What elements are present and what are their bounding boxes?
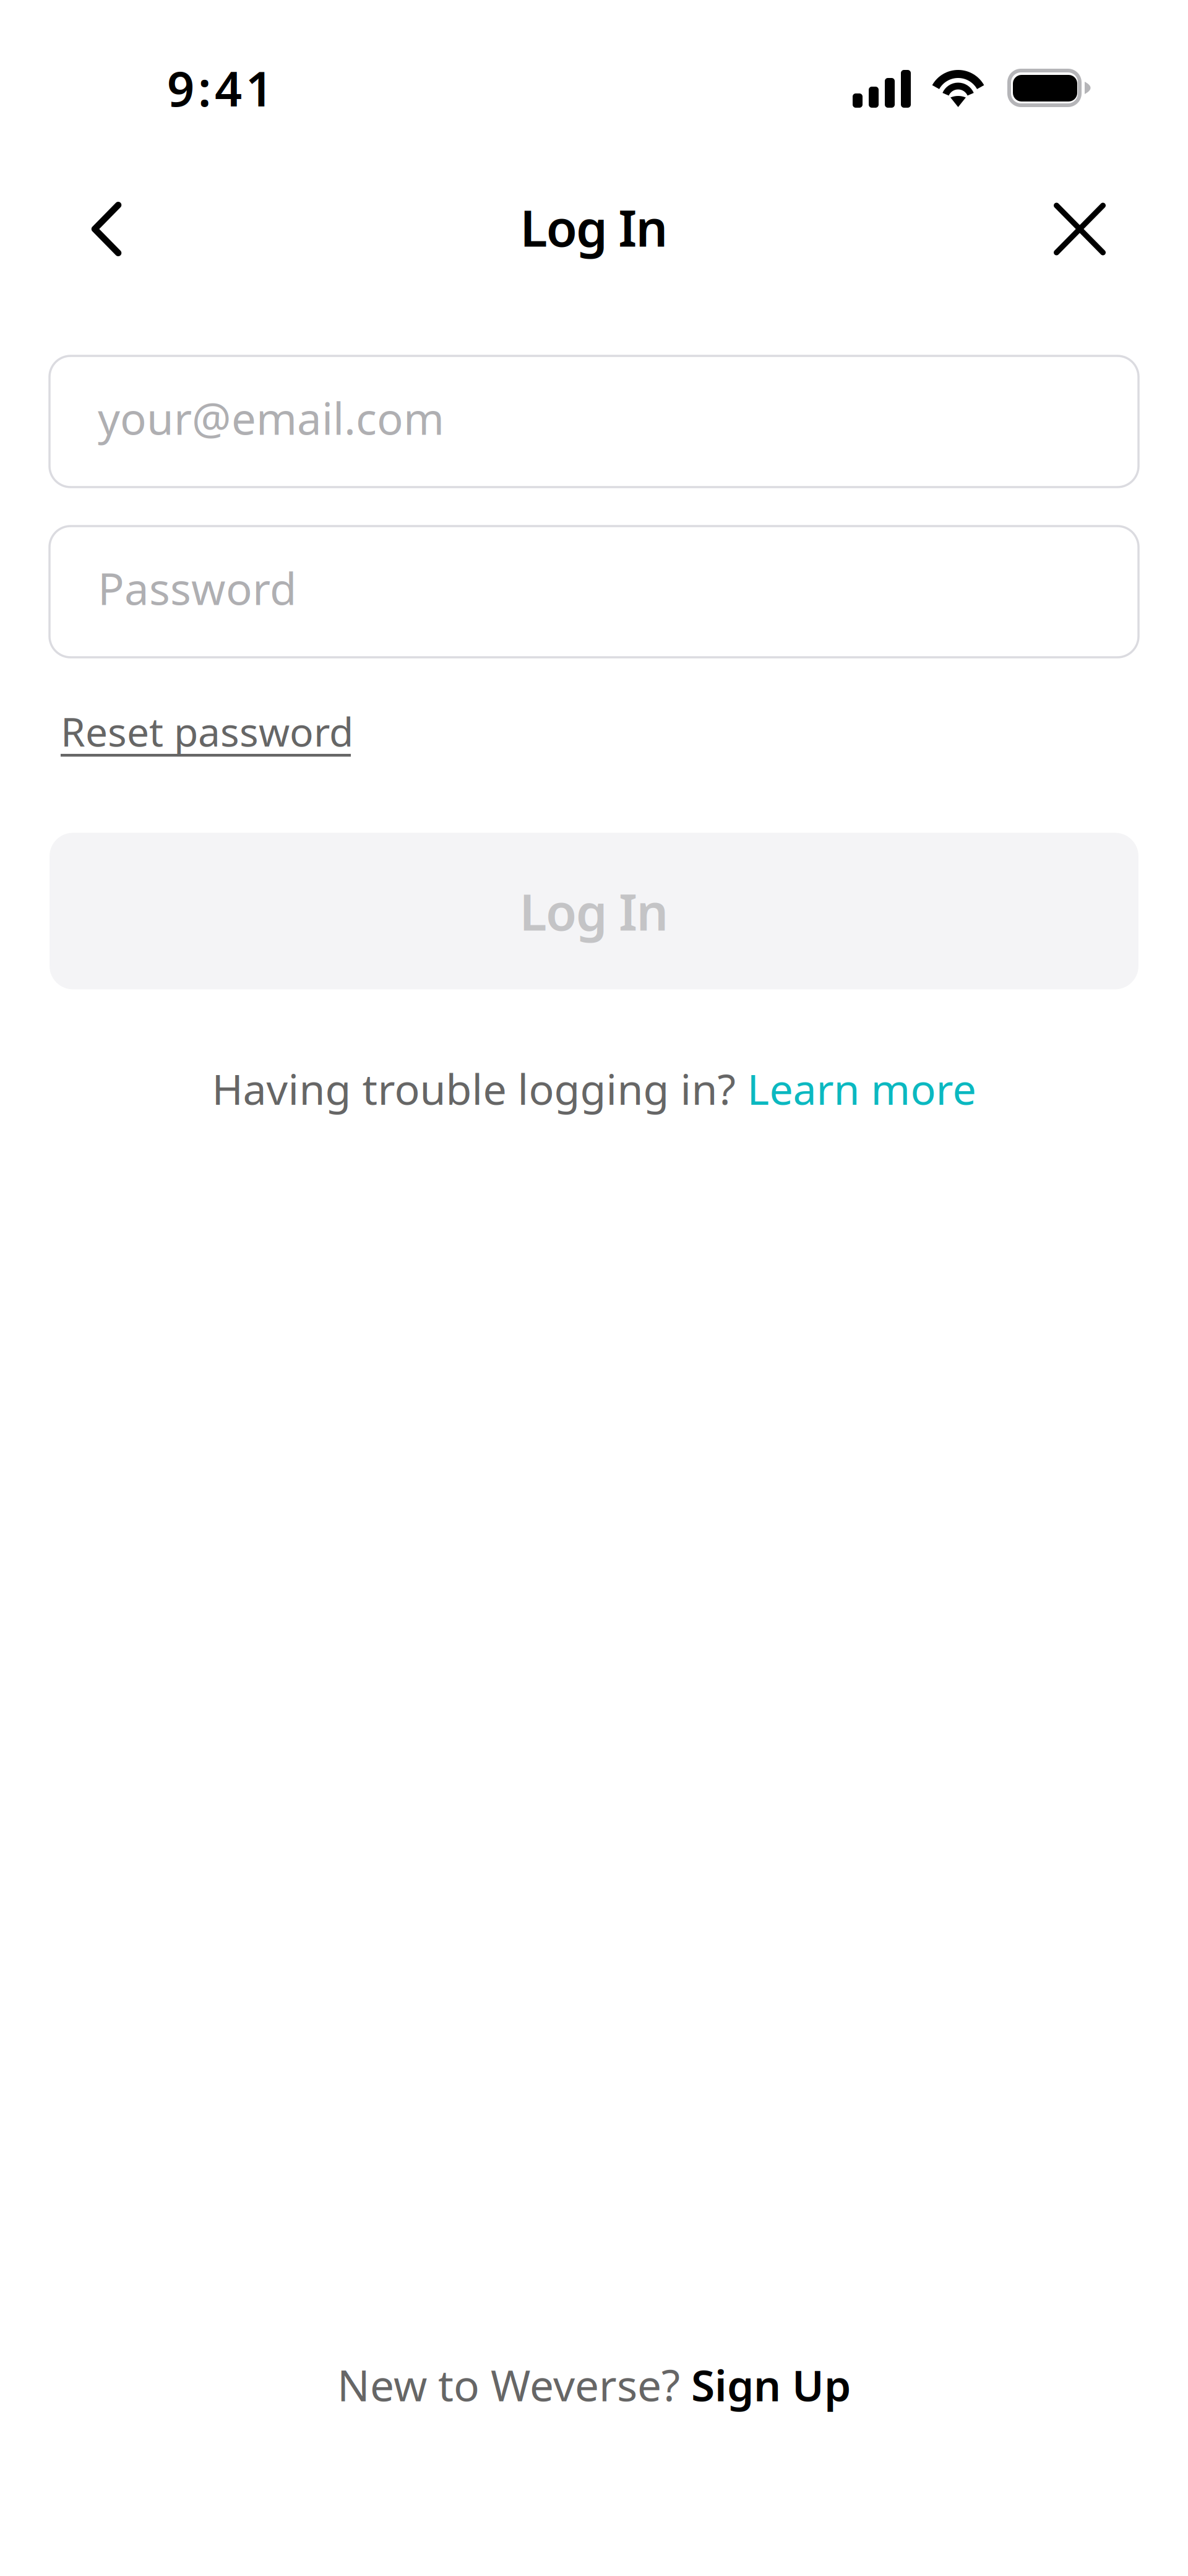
button[interactable]: Reset password xyxy=(61,705,358,760)
button[interactable]: Close xyxy=(1036,186,1123,272)
staticText: Log In xyxy=(519,878,669,944)
button[interactable]: Learn more xyxy=(747,1061,976,1116)
button[interactable]: Password xyxy=(49,526,1138,657)
staticText: Having trouble logging in? xyxy=(212,1061,747,1116)
staticText: Log In xyxy=(520,194,668,261)
button[interactable]: Back xyxy=(63,186,150,272)
staticText: 9:41 xyxy=(167,56,273,120)
staticText: Password xyxy=(98,559,296,617)
staticText: Sign Up xyxy=(691,2356,851,2413)
button[interactable]: Log In xyxy=(49,833,1138,989)
staticText: Reset password xyxy=(61,705,353,758)
staticText: New to Weverse? xyxy=(337,2356,691,2413)
button[interactable]: Sign Up xyxy=(691,2356,851,2413)
staticText: your@email.com xyxy=(98,389,444,447)
button[interactable]: your@email.com xyxy=(49,356,1138,487)
staticText: Learn more xyxy=(747,1061,976,1116)
